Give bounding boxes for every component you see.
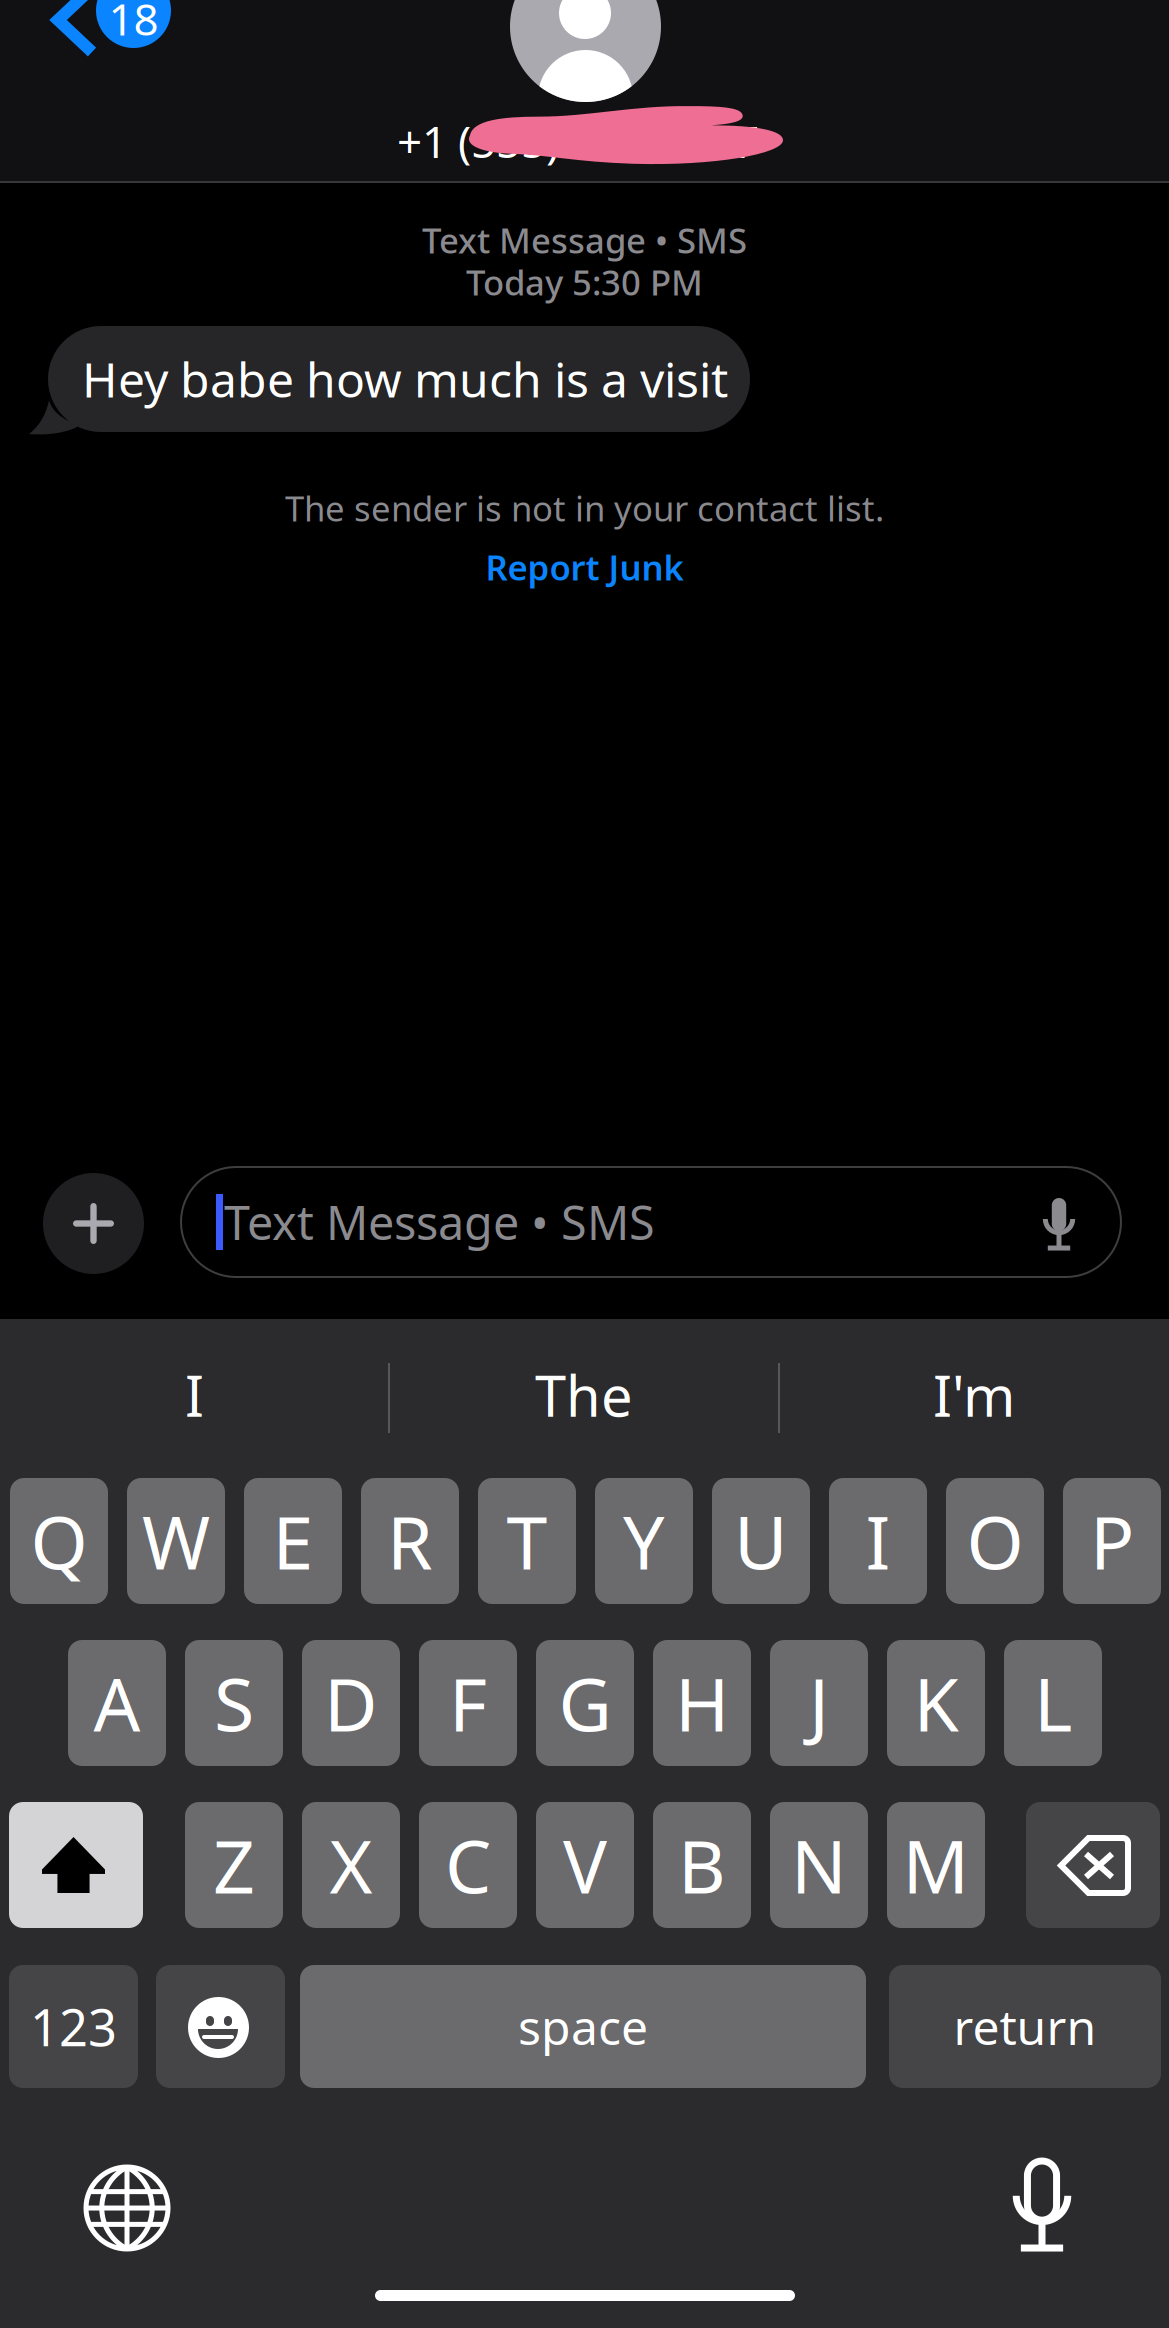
button[interactable]: Shift [9,1802,143,1928]
button[interactable]: space [300,1965,866,2088]
button[interactable]: Z [185,1802,283,1928]
button[interactable]: E [244,1478,342,1604]
button[interactable]: V [536,1802,634,1928]
button[interactable]: P [1063,1478,1161,1604]
staticText: X [329,1816,372,1914]
button[interactable]: Q [10,1478,108,1604]
button[interactable]: N [770,1802,868,1928]
staticText: I [865,1492,890,1590]
staticText: I [185,1358,204,1432]
button[interactable]: B [653,1802,751,1928]
staticText: space [518,1995,648,2058]
staticText: +1 (555) 123-4567 [397,112,759,170]
button[interactable]: T [478,1478,576,1604]
staticText: S [214,1654,254,1752]
staticText: return [953,1995,1096,2058]
button[interactable]: A [68,1640,166,1766]
staticText: Y [623,1492,665,1590]
button[interactable]: Report Junk [0,543,1169,591]
staticText: Text Message • SMS [422,217,747,263]
button[interactable]: I'm [779,1341,1169,1449]
button[interactable]: Switch keyboard [67,2148,187,2268]
button[interactable]: Y [595,1478,693,1604]
button[interactable]: H [653,1640,751,1766]
button[interactable]: W [127,1478,225,1604]
staticText: 18 [108,0,158,48]
staticText: J [809,1654,829,1752]
button[interactable]: L [1004,1640,1102,1766]
button[interactable]: K [887,1640,985,1766]
button[interactable]: Dictation [982,2144,1102,2264]
staticText: M [902,1816,969,1914]
button[interactable]: G [536,1640,634,1766]
button[interactable]: X [302,1802,400,1928]
staticText: W [142,1492,210,1590]
button[interactable]: F [419,1640,517,1766]
staticText: B [678,1816,726,1914]
button[interactable]: O [946,1478,1044,1604]
staticText: E [272,1492,313,1590]
staticText: Today 5:30 PM [466,259,703,305]
button[interactable]: U [712,1478,810,1604]
staticText: Hey babe how much is a visit [82,347,728,411]
staticText: I'm [933,1358,1015,1432]
staticText: N [791,1816,847,1914]
button[interactable]: D [302,1640,400,1766]
staticText: Z [213,1816,255,1914]
button[interactable]: The [389,1341,779,1449]
button[interactable]: return [889,1965,1161,2088]
button[interactable]: Emoji [156,1965,285,2088]
button[interactable]: Delete [1026,1802,1160,1928]
staticText: G [558,1654,611,1752]
staticText: D [324,1654,378,1752]
staticText: P [1090,1492,1134,1590]
button[interactable]: Text Message • SMS [181,1167,1121,1277]
staticText: T [506,1492,547,1590]
staticText: F [449,1654,487,1752]
staticText: V [563,1816,607,1914]
button[interactable]: R [361,1478,459,1604]
staticText: Text Message • SMS [224,1191,655,1253]
staticText: C [445,1816,491,1914]
button[interactable]: J [770,1640,868,1766]
button[interactable]: Back [36,0,216,80]
button[interactable]: C [419,1802,517,1928]
button[interactable]: Add attachment [43,1173,144,1274]
staticText: A [93,1654,140,1752]
button[interactable]: I [829,1478,927,1604]
button[interactable]: I [0,1341,389,1449]
staticText: K [913,1654,958,1752]
staticText: Q [30,1492,87,1590]
staticText: The sender is not in your contact list. [285,485,884,531]
button[interactable]: 123 [9,1965,138,2088]
staticText: H [675,1654,729,1752]
button[interactable]: Contact info [510,0,661,102]
staticText: R [387,1492,433,1590]
staticText: L [1034,1654,1072,1752]
staticText: O [966,1492,1023,1590]
button[interactable]: S [185,1640,283,1766]
staticText: Report Junk [485,544,683,590]
button[interactable]: M [887,1802,985,1928]
staticText: The [535,1358,633,1432]
staticText: 123 [30,1993,117,2060]
staticText: U [734,1492,788,1590]
